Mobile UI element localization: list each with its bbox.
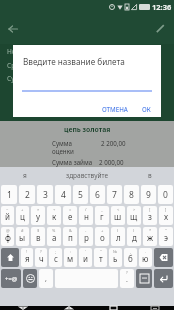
staticText: 1	[7, 189, 12, 201]
staticText: ]	[165, 207, 167, 212]
staticText: 0	[163, 189, 168, 201]
staticText: ь	[113, 253, 118, 264]
button[interactable]: №	[109, 248, 122, 267]
button[interactable]: [	[143, 206, 157, 225]
staticText: (	[117, 228, 119, 233]
button[interactable]: ÷	[47, 206, 61, 225]
button[interactable]: Back	[3, 19, 23, 39]
button[interactable]: Edit	[150, 19, 170, 39]
staticText: п	[68, 232, 73, 243]
button[interactable]: ,	[124, 248, 137, 267]
button[interactable]: '	[79, 248, 92, 267]
button[interactable]: Enter	[154, 269, 173, 288]
button[interactable]: :	[64, 248, 77, 267]
staticText: Ср	[7, 61, 16, 70]
staticText: +	[21, 207, 24, 212]
button[interactable]: ]	[159, 206, 173, 225]
staticText: #	[21, 228, 24, 233]
button[interactable]: /	[79, 206, 93, 225]
button[interactable]: >	[127, 206, 141, 225]
staticText: "	[100, 249, 102, 254]
button[interactable]: Emoji	[23, 269, 37, 288]
button[interactable]: ;	[49, 248, 62, 267]
button[interactable]: #	[16, 227, 29, 246]
button[interactable]: !	[21, 248, 33, 267]
staticText: й	[5, 211, 10, 222]
button[interactable]: 2	[19, 185, 35, 204]
staticText: цепь золотая	[64, 125, 111, 134]
staticText: 7	[112, 189, 117, 201]
button[interactable]: <	[111, 206, 125, 225]
button[interactable]: .	[139, 248, 152, 267]
button[interactable]: 9	[141, 185, 156, 204]
button[interactable]: 6	[90, 185, 105, 204]
staticText: ф	[5, 232, 11, 243]
button[interactable]: 1	[1, 185, 17, 204]
staticText: Сумма займа	[52, 158, 93, 166]
button[interactable]: +=@	[1, 269, 21, 288]
button[interactable]: Home	[46, 306, 91, 310]
button[interactable]: )	[127, 227, 141, 246]
staticText: :	[70, 249, 72, 254]
button[interactable]: 0	[158, 185, 173, 204]
button[interactable]: ,	[39, 269, 53, 288]
button[interactable]	[22, 82, 152, 92]
button[interactable]: %	[47, 227, 61, 246]
button[interactable]: _	[95, 206, 109, 225]
staticText: Су	[7, 74, 15, 83]
staticText: %	[52, 228, 56, 233]
button[interactable]: (	[111, 227, 125, 246]
staticText: у	[36, 211, 41, 222]
button[interactable]: здравствуйте	[49, 167, 126, 184]
button[interactable]: 8	[124, 185, 139, 204]
staticText: в	[36, 232, 41, 243]
staticText: 5	[78, 189, 83, 201]
button[interactable]: +	[95, 227, 109, 246]
button[interactable]: 4	[55, 185, 71, 204]
button[interactable]: +	[16, 206, 29, 225]
staticText: ?	[40, 249, 42, 254]
staticText: с	[54, 253, 58, 264]
button[interactable]: Backspace	[154, 248, 173, 267]
button[interactable]: я	[0, 167, 49, 184]
staticText: 4	[61, 189, 66, 201]
button[interactable]: ОТМЕНА	[98, 102, 132, 116]
staticText: ОТМЕНА	[102, 105, 128, 113]
staticText: ×	[37, 207, 40, 212]
button[interactable]: 3	[37, 185, 53, 204]
button[interactable]: &	[63, 227, 77, 246]
staticText: 6	[95, 189, 100, 201]
button[interactable]: ?	[120, 269, 134, 288]
button[interactable]: *	[143, 227, 157, 246]
button[interactable]: "	[159, 227, 173, 246]
button[interactable]: Hide keyboard	[136, 306, 174, 310]
staticText: [	[149, 207, 151, 212]
staticText: ?	[126, 270, 128, 275]
button[interactable]: ?	[35, 248, 47, 267]
button[interactable]: @	[1, 227, 14, 246]
staticText: и	[83, 253, 88, 264]
button[interactable]: в	[126, 167, 174, 184]
button[interactable]: 7	[107, 185, 122, 204]
button[interactable]: "	[94, 248, 107, 267]
staticText: н	[84, 211, 89, 222]
staticText: 2 000,00	[99, 158, 124, 166]
staticText: 8	[129, 189, 134, 201]
button[interactable]: ×	[31, 206, 45, 225]
button[interactable]: Recents	[91, 306, 136, 310]
button[interactable]: 5	[73, 185, 88, 204]
staticText: @	[6, 228, 10, 233]
button[interactable]: Shift	[1, 248, 19, 267]
button[interactable]: $	[31, 227, 45, 246]
button[interactable]: -	[79, 227, 93, 246]
button[interactable]: =	[63, 206, 77, 225]
button[interactable]: Back	[0, 306, 46, 310]
staticText: .	[145, 249, 147, 254]
staticText: "	[165, 228, 167, 233]
button[interactable]: Language	[136, 269, 152, 288]
button[interactable]: ~	[1, 206, 14, 225]
staticText: +	[101, 228, 104, 233]
button[interactable]: ОК	[138, 102, 155, 116]
